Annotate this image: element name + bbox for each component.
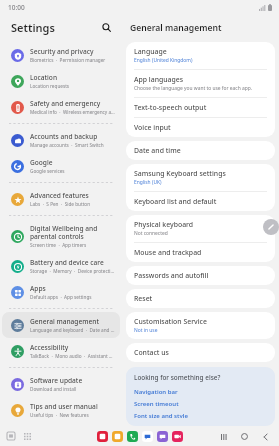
staticText: Battery and device care [30,258,104,267]
staticText: Passwords and autofill [134,271,209,280]
button[interactable]: Gallery [112,431,123,442]
staticText: Download and install [30,386,77,392]
staticText: Not in use [134,327,158,334]
staticText: Font size and style [134,412,188,418]
staticText: Security and privacy [30,47,94,56]
button[interactable]: General management [2,312,120,338]
button[interactable]: Recents [6,431,16,441]
staticText: Advanced features [30,191,89,200]
staticText: TalkBack · Mono audio · Assistant menu [30,353,115,359]
button[interactable]: Text-to-speech output [126,98,275,117]
staticText: Date and time [134,146,181,155]
staticText: Storage · Memory · Device protection [30,268,115,274]
button[interactable]: Security and privacy [2,42,120,68]
button[interactable]: My Files [97,431,108,442]
button[interactable]: Google [2,153,120,179]
button[interactable]: Voice input [126,118,275,137]
staticText: Useful tips · New features [30,412,89,418]
staticText: Accessibility [30,343,69,352]
button[interactable]: Internet [157,431,168,442]
staticText: Language [134,47,167,56]
staticText: Safety and emergency [30,99,101,108]
staticText: English (UK) [134,179,162,186]
staticText: Manage accounts · Smart Switch [30,142,104,148]
staticText: Screen time · App timers [30,242,87,248]
staticText: App languages [134,75,184,84]
button[interactable]: Date and time [126,141,275,160]
staticText: Navigation bar [134,388,178,396]
staticText: Reset [134,294,153,303]
staticText: Google [30,158,53,167]
staticText: Labs · S Pen · Side button [30,201,91,207]
button[interactable]: Tips and user manual [2,397,120,423]
staticText: Apps [30,284,46,293]
button[interactable]: Passwords and autofill [126,266,275,285]
staticText: Choose the language you want to use for … [134,85,252,92]
button[interactable]: Digital Wellbeing and parental controls [2,219,120,253]
staticText: General management [30,317,99,326]
staticText: Text-to-speech output [134,103,207,112]
staticText: Location [30,73,58,82]
button[interactable]: Mouse and trackpad [126,243,275,262]
button[interactable]: Language [126,42,275,69]
staticText: Screen timeout [134,400,179,408]
staticText: Physical keyboard [134,220,194,229]
staticText: Accounts and backup [30,132,98,141]
button[interactable]: Samsung Keyboard settings [126,164,275,191]
staticText: Google services [30,168,65,174]
staticText: Samsung Keyboard settings [134,169,226,178]
button[interactable]: All apps [22,431,32,441]
button[interactable]: Recent apps [218,431,229,442]
staticText: Digital Wellbeing and parental controls [30,224,115,241]
staticText: Language and keyboard · Date and time [30,327,115,333]
button[interactable]: Messages [142,431,153,442]
staticText: Settings [11,20,98,35]
button[interactable]: Physical keyboard [126,215,275,242]
staticText: Mouse and trackpad [134,248,202,257]
staticText: General management [130,22,222,34]
staticText: Biometrics · Permission manager [30,57,106,63]
staticText: Software update [30,376,83,385]
button[interactable]: Edit [263,219,279,235]
button[interactable]: Navigation bar [134,386,267,398]
staticText: English (United Kingdom) [134,57,193,64]
staticText: Contact us [134,348,169,357]
button[interactable]: Apps [2,279,120,305]
button[interactable]: Accounts and backup [2,127,120,153]
button[interactable]: Reset [126,289,275,308]
button[interactable]: Software update [2,371,120,397]
button[interactable]: Location [2,68,120,94]
button[interactable]: Font size and style [134,410,267,420]
staticText: Looking for something else? [134,373,221,382]
button[interactable]: Battery and device care [2,253,120,279]
staticText: Voice input [134,123,171,132]
button[interactable]: Screen timeout [134,398,267,410]
button[interactable]: Safety and emergency [2,94,120,120]
staticText: Customisation Service [134,317,207,326]
staticText: Medical info · Wireless emergency alerts [30,109,115,115]
staticText: Location requests [30,83,70,89]
staticText: Default apps · App settings [30,294,92,300]
button[interactable]: Search settings [98,19,114,35]
button[interactable]: Accessibility [2,338,120,364]
staticText: Tips and user manual [30,402,98,411]
button[interactable]: Keyboard list and default [126,192,275,211]
button[interactable]: Home [239,431,250,442]
staticText: Not connected [134,230,168,237]
button[interactable]: App languages [126,70,275,97]
button[interactable]: Contact us [126,343,275,362]
button[interactable]: Camera [172,431,183,442]
staticText: 10:00 [8,3,25,12]
button[interactable]: Back [260,431,271,442]
button[interactable]: Phone [127,431,138,442]
button[interactable]: Customisation Service [126,312,275,339]
button[interactable]: Advanced features [2,186,120,212]
staticText: Keyboard list and default [134,197,217,206]
